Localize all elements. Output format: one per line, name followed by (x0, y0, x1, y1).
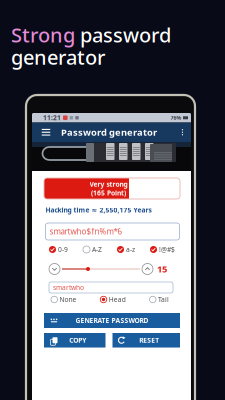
button[interactable]: A-Z (83, 245, 102, 254)
button[interactable]: Tail (149, 295, 169, 304)
staticText: Strong (11, 21, 80, 48)
staticText: None (59, 295, 76, 304)
staticText: password (80, 21, 171, 48)
staticText: 0-9 (58, 245, 68, 254)
staticText: a-z (126, 245, 135, 254)
button[interactable]: 0-9 (49, 245, 68, 254)
button[interactable]: More options (176, 122, 189, 142)
button[interactable]: Head (100, 295, 126, 304)
button[interactable]: a-z (117, 245, 135, 254)
staticText: Password generator (61, 126, 157, 138)
staticText: !@#$ (159, 245, 175, 254)
staticText: Hacking time ≈ 2,550,175 Years (45, 206, 151, 214)
staticText: 76% (170, 114, 181, 121)
staticText: GENERATE PASSWORD (75, 316, 148, 325)
button[interactable]: COPY (44, 333, 105, 347)
staticText: 15 (157, 263, 167, 275)
button[interactable]: None (51, 295, 76, 304)
staticText: A-Z (92, 245, 102, 254)
staticText: smartwho$fn%m*6 (49, 226, 122, 237)
staticText: Head (109, 295, 126, 304)
staticText: smartwho (53, 283, 84, 292)
staticText: generator (11, 44, 105, 70)
button[interactable]: Menu (37, 122, 55, 142)
button[interactable]: GENERATE PASSWORD (44, 313, 180, 328)
button[interactable]: Decrease length (49, 263, 60, 274)
staticText: RESET (139, 336, 159, 345)
staticText: Very strong (89, 180, 127, 188)
staticText: COPY (69, 336, 86, 345)
staticText: (165 Point) (91, 188, 126, 197)
button[interactable]: RESET (112, 333, 180, 347)
button[interactable]: Increase length (142, 263, 153, 274)
staticText: 11:21 (43, 113, 61, 122)
button[interactable]: !@#$ (150, 245, 175, 254)
staticText: Tail (158, 295, 169, 304)
